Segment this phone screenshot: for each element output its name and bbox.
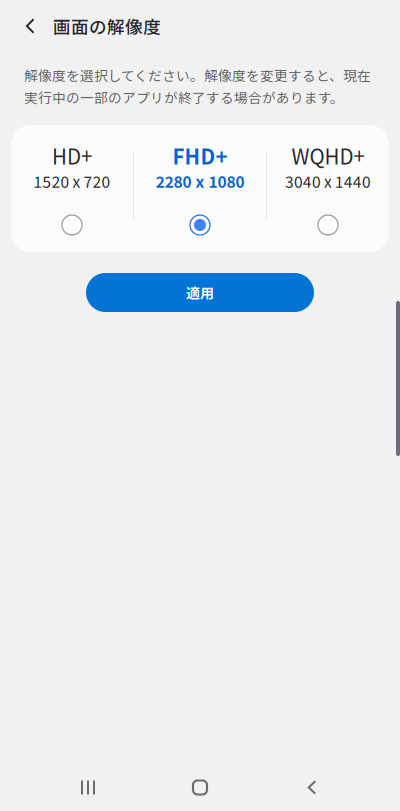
staticText: WQHD+ xyxy=(291,141,364,170)
staticText: 画面の解像度 xyxy=(53,13,161,39)
button[interactable]: Recent apps xyxy=(32,764,144,811)
staticText: FHD+ xyxy=(172,141,227,170)
button[interactable]: Back xyxy=(256,764,368,811)
staticText: 2280 x 1080 xyxy=(155,170,244,192)
staticText: 3040 x 1440 xyxy=(285,170,371,192)
button[interactable]: 適用 xyxy=(86,273,314,312)
button[interactable]: HD+ xyxy=(11,125,133,252)
staticText: 1520 x 720 xyxy=(33,170,110,192)
staticText: HD+ xyxy=(52,141,92,170)
button[interactable]: WQHD+ xyxy=(267,125,389,252)
button[interactable]: Back xyxy=(0,0,53,52)
staticText: 解像度を選択してください。解像度を変更すると、現在 xyxy=(24,65,371,85)
button[interactable]: FHD+ xyxy=(134,125,266,252)
staticText: 実行中の一部のアプリが終了する場合があります。 xyxy=(24,87,344,107)
staticText: 適用 xyxy=(186,282,214,303)
button[interactable]: Home xyxy=(144,764,256,811)
